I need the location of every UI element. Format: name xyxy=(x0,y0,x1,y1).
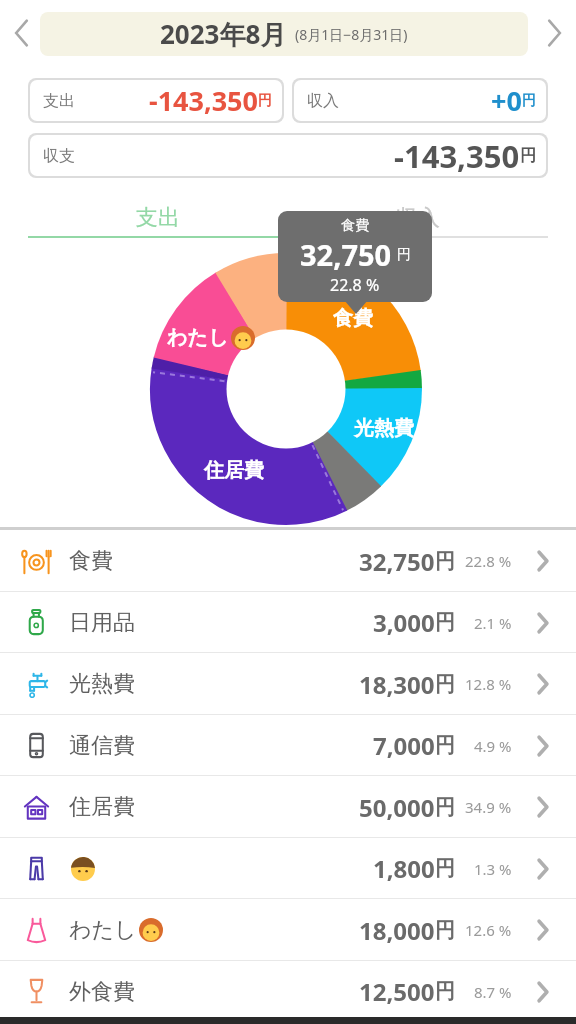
staticText: 収支 xyxy=(43,146,75,166)
staticText: 円 xyxy=(520,146,536,166)
staticText: 円 xyxy=(435,610,455,635)
button[interactable]: 2023年8月 xyxy=(40,12,528,56)
staticText: -143,350 xyxy=(394,135,520,176)
button[interactable] xyxy=(12,19,31,47)
staticText: 円 xyxy=(522,92,536,110)
staticText: 光熱費 xyxy=(69,670,135,698)
staticText: 住居費 xyxy=(69,793,135,821)
staticText: 34.9 % xyxy=(465,797,512,817)
staticText: 2.1 % xyxy=(474,613,512,633)
staticText: (8月1日−8月31日) xyxy=(295,25,408,44)
staticText: 円 xyxy=(435,918,455,943)
staticText: 32,750 xyxy=(359,545,435,578)
button[interactable]: 支出 xyxy=(28,198,288,238)
staticText: 18,300 xyxy=(359,668,435,701)
staticText: 1.3 % xyxy=(474,859,512,879)
staticText: 円 xyxy=(435,795,455,820)
button[interactable] xyxy=(545,19,564,47)
staticText: 収入 xyxy=(307,91,339,111)
staticText: +0 xyxy=(491,82,522,119)
staticText: 12.6 % xyxy=(465,920,512,940)
staticText: 円 xyxy=(435,672,455,697)
staticText: 円 xyxy=(258,92,272,110)
staticText: 50,000 xyxy=(359,791,435,824)
button[interactable]: 収入 xyxy=(294,80,546,121)
staticText: 支出 xyxy=(43,91,75,111)
staticText: わたし xyxy=(69,916,137,944)
staticText: わたし xyxy=(167,325,229,350)
staticText: 18,000 xyxy=(359,914,435,947)
staticText: 食費 xyxy=(69,547,113,575)
staticText: 食費 xyxy=(341,217,369,235)
staticText: 12,500 xyxy=(359,975,435,1008)
staticText: 光熱費 xyxy=(354,416,414,441)
staticText: 収入 xyxy=(396,204,440,232)
staticText: 22.8 % xyxy=(465,551,512,571)
staticText: 外食費 xyxy=(69,978,135,1006)
button[interactable]: 外食費 xyxy=(0,961,576,1022)
button[interactable]: 1,800 xyxy=(0,838,576,899)
staticText: 7,000 xyxy=(373,729,435,762)
staticText: 3,000 xyxy=(373,606,435,639)
button[interactable]: 支出 xyxy=(30,80,282,121)
staticText: 支出 xyxy=(136,204,180,232)
staticText: 食費 xyxy=(333,306,373,331)
staticText: 円 xyxy=(435,979,455,1004)
button[interactable]: 収支 xyxy=(30,135,546,176)
staticText: 通信費 xyxy=(69,732,135,760)
staticText: 2023年8月 xyxy=(160,16,287,52)
staticText: 住居費 xyxy=(204,458,264,483)
staticText: -143,350 xyxy=(149,82,258,119)
staticText: 8.7 % xyxy=(474,982,512,1002)
button[interactable]: 収入 xyxy=(288,198,548,238)
staticText: 円 xyxy=(435,549,455,574)
button[interactable]: わたし xyxy=(0,899,576,961)
button[interactable]: 光熱費 xyxy=(0,653,576,715)
button[interactable]: 住居費 xyxy=(0,776,576,838)
staticText: 円 xyxy=(435,733,455,758)
button[interactable]: 日用品 xyxy=(0,592,576,653)
staticText: 円 xyxy=(435,856,455,881)
staticText: 日用品 xyxy=(69,609,135,637)
button[interactable]: 通信費 xyxy=(0,715,576,776)
staticText: 12.8 % xyxy=(465,674,512,694)
button[interactable]: 食費 xyxy=(0,530,576,592)
staticText: 32,750 xyxy=(300,235,392,274)
staticText: 1,800 xyxy=(373,852,435,885)
staticText: 22.8 % xyxy=(330,274,380,296)
staticText: 円 xyxy=(397,246,411,264)
staticText: 4.9 % xyxy=(474,736,512,756)
